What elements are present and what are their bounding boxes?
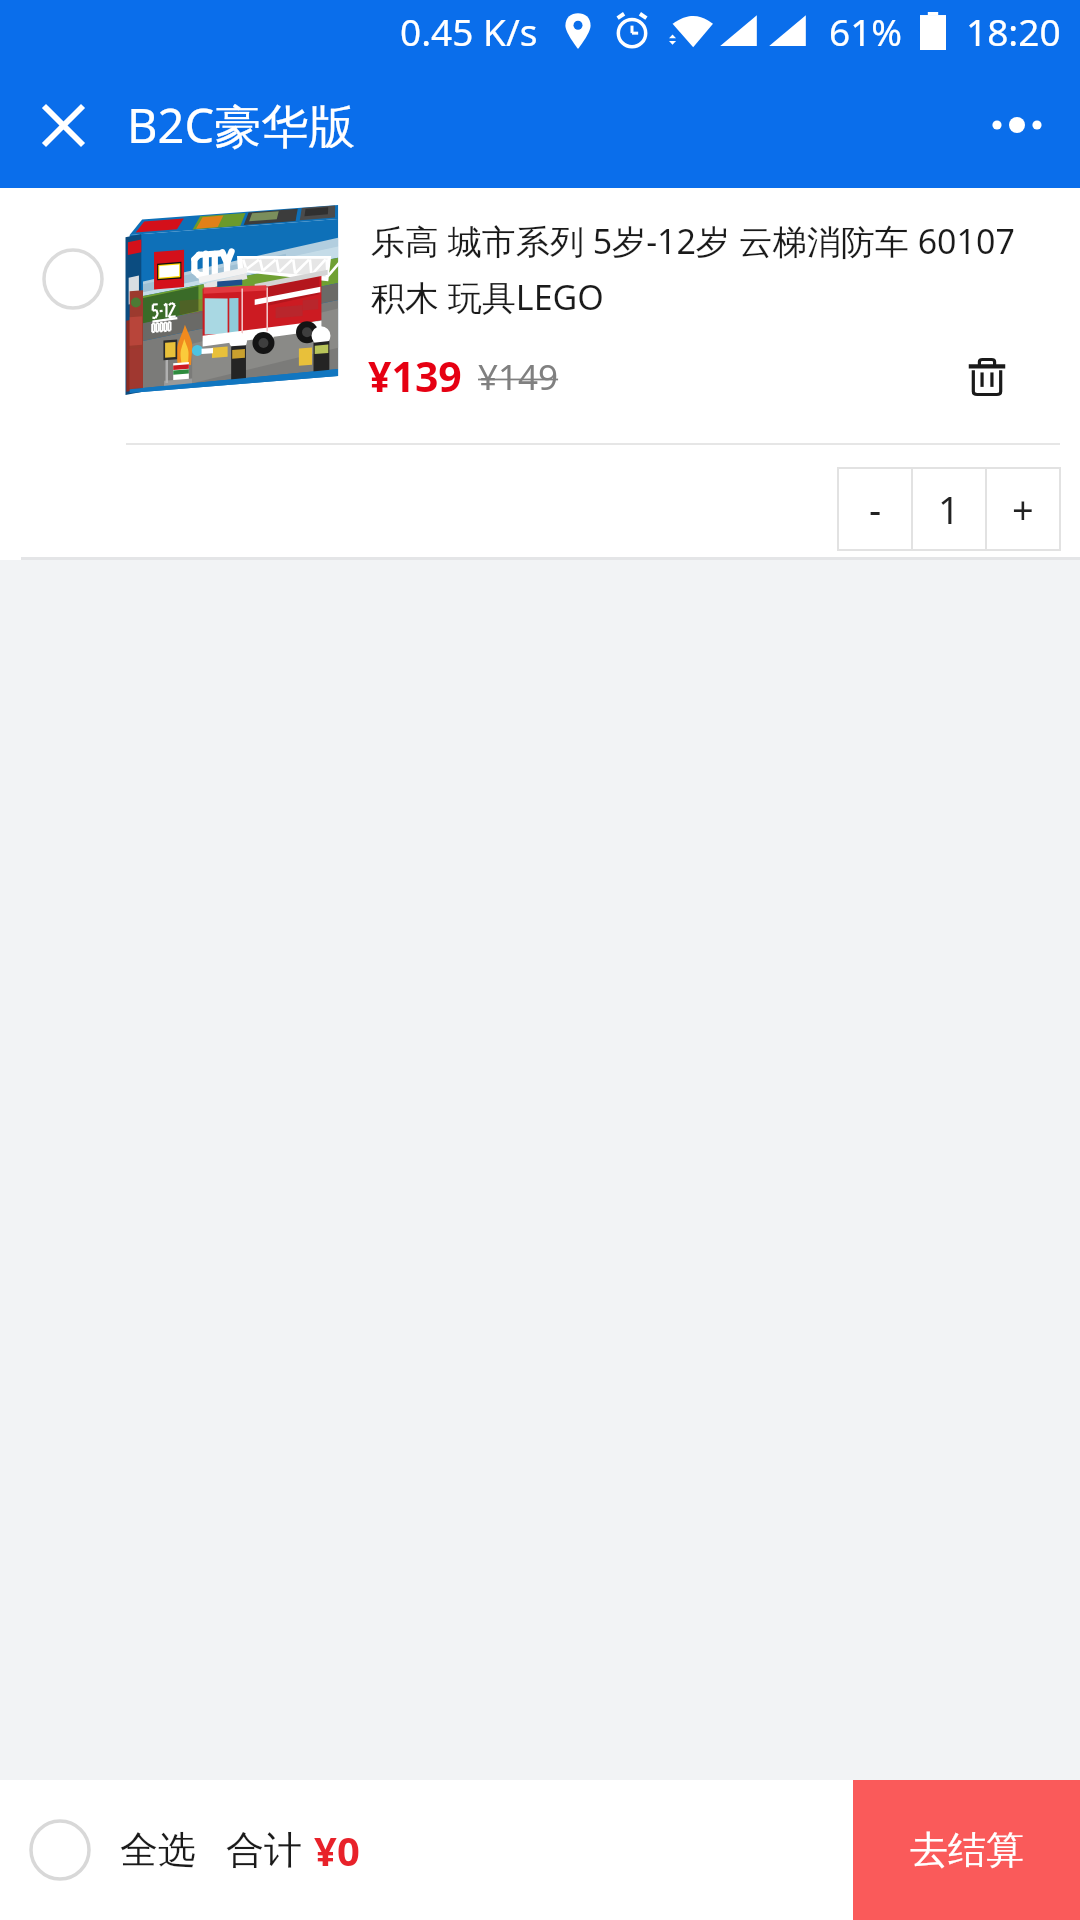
staticText: ¥0	[314, 1823, 360, 1877]
button[interactable]: +	[986, 468, 1060, 550]
staticText: 全选	[120, 1826, 196, 1874]
button[interactable]: Select all	[0, 1780, 120, 1920]
staticText: ¥149	[478, 353, 559, 401]
staticText: ¥139	[368, 348, 462, 404]
button[interactable]: 乐高 城市系列 5岁-12岁 云梯消防车 60107 积木 玩具LEGO	[371, 218, 1031, 320]
button[interactable]: -	[838, 468, 912, 550]
staticText: 61%	[829, 6, 903, 56]
button[interactable]: 去结算	[853, 1780, 1080, 1920]
staticText: +	[1012, 483, 1034, 535]
button[interactable]: Product image	[128, 214, 336, 396]
button[interactable]: More options	[992, 90, 1042, 160]
staticText: 去结算	[910, 1826, 1024, 1874]
staticText: 合计	[226, 1826, 302, 1874]
button[interactable]: 1	[912, 468, 986, 550]
button[interactable]: Close	[21, 83, 105, 167]
staticText: 0.45 K/s	[400, 6, 538, 56]
staticText: 1	[938, 483, 960, 535]
button[interactable]: Select item	[42, 248, 104, 310]
staticText: 18:20	[966, 6, 1061, 56]
button[interactable]: B2C豪华版	[127, 93, 356, 157]
button[interactable]: Delete	[955, 345, 1019, 409]
staticText: -	[869, 483, 882, 535]
